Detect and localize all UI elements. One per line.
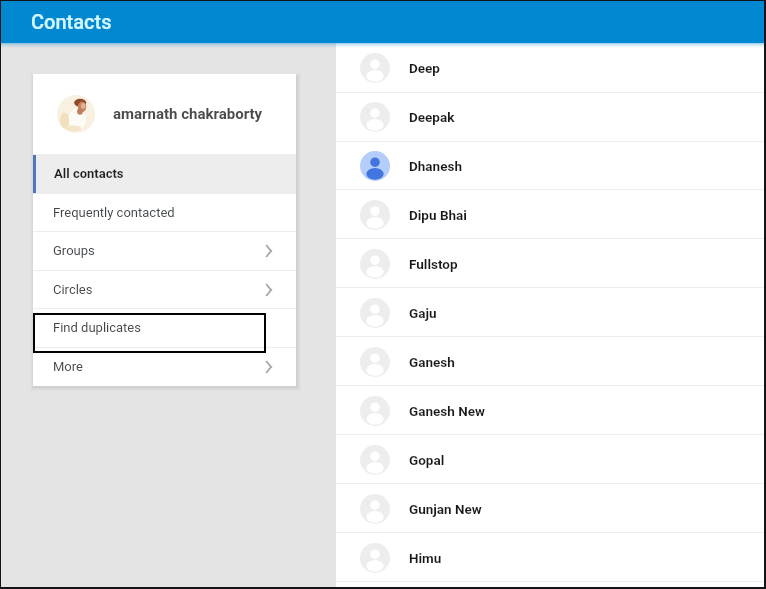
button[interactable]: Gopal: [336, 435, 764, 484]
staticText: Frequently contacted: [53, 205, 175, 220]
staticText: Contacts: [31, 10, 112, 33]
button[interactable]: All contacts: [33, 154, 296, 193]
staticText: Fullstop: [409, 256, 458, 272]
button[interactable]: Gunjan New: [336, 484, 764, 533]
staticText: All contacts: [54, 166, 124, 181]
staticText: Gopal: [409, 452, 445, 468]
button[interactable]: Frequently contacted: [33, 193, 296, 232]
button[interactable]: Gaju: [336, 288, 764, 337]
staticText: amarnath chakraborty: [113, 105, 263, 123]
staticText: Deep: [409, 60, 440, 76]
staticText: Gunjan New: [409, 501, 482, 517]
staticText: Himu: [409, 550, 442, 566]
button[interactable]: Dipu Bhai: [336, 190, 764, 239]
button[interactable]: Circles: [33, 270, 296, 309]
button[interactable]: Ganesh New: [336, 386, 764, 435]
button[interactable]: Fullstop: [336, 239, 764, 288]
staticText: Find duplicates: [53, 320, 141, 335]
staticText: More: [53, 359, 83, 374]
staticText: Groups: [53, 243, 95, 258]
button[interactable]: Deep: [336, 43, 764, 92]
button[interactable]: Dhanesh: [336, 141, 764, 190]
staticText: Gaju: [409, 305, 437, 321]
button[interactable]: Find duplicates: [33, 308, 296, 347]
button[interactable]: More: [33, 347, 296, 386]
button[interactable]: Ganesh: [336, 337, 764, 386]
button[interactable]: Himu: [336, 533, 764, 582]
button[interactable]: Deepak: [336, 92, 764, 141]
staticText: Dipu Bhai: [409, 207, 467, 223]
staticText: Deepak: [409, 109, 455, 125]
staticText: Ganesh New: [409, 403, 485, 419]
staticText: Ganesh: [409, 354, 455, 370]
staticText: Dhanesh: [409, 158, 462, 174]
staticText: Circles: [53, 282, 93, 297]
button[interactable]: Groups: [33, 231, 296, 270]
button[interactable]: amarnath chakraborty: [33, 74, 296, 154]
